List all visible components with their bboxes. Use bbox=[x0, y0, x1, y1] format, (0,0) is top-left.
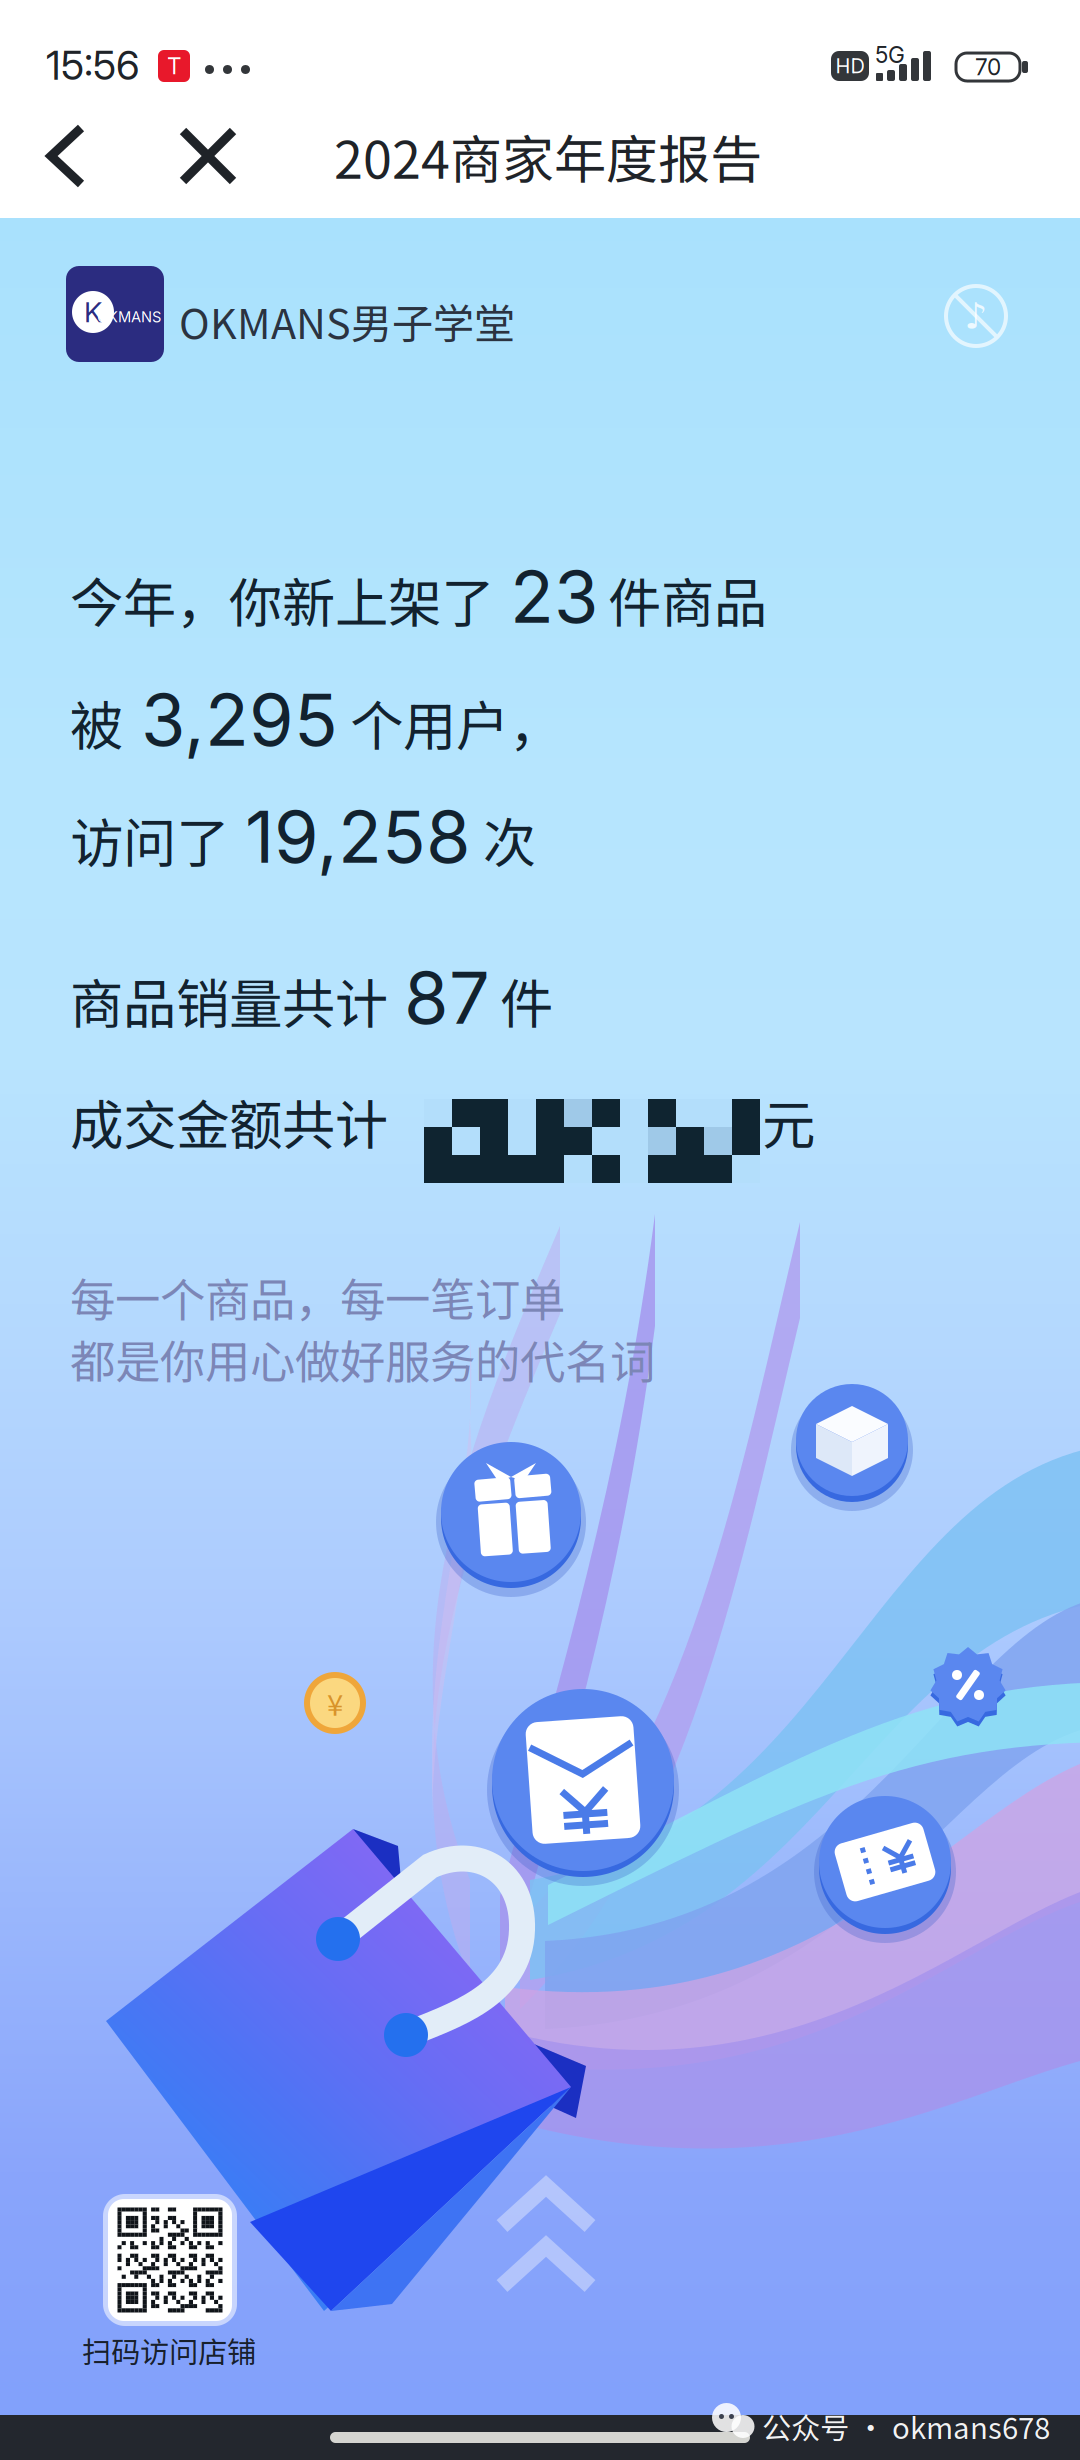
staticText: ¥ bbox=[327, 1682, 343, 1724]
staticText: ♪ bbox=[964, 295, 987, 337]
staticText: 元 bbox=[762, 1083, 815, 1160]
staticText: 70 bbox=[975, 53, 1001, 81]
staticText: 今年，你新上架了 bbox=[70, 561, 494, 638]
staticText: 3,295 bbox=[141, 676, 338, 763]
staticText: 商品销量共计 bbox=[70, 962, 388, 1039]
staticText: 87 bbox=[404, 954, 490, 1041]
button[interactable]: 返回 bbox=[18, 108, 114, 204]
staticText: 扫码访问店铺 bbox=[82, 2329, 256, 2371]
staticText: 19,258 bbox=[245, 793, 471, 880]
staticText: 成交金额共计 bbox=[70, 1083, 388, 1160]
button[interactable]: 扫码访问店铺 bbox=[103, 2194, 237, 2326]
staticText: 15:56 bbox=[46, 41, 140, 89]
staticText: 件 bbox=[500, 962, 553, 1039]
staticText: 个用户， bbox=[350, 684, 562, 761]
staticText: 5G bbox=[875, 41, 905, 68]
staticText: 2024商家年度报告 bbox=[334, 118, 762, 194]
staticText: OKMANS男子学堂 bbox=[179, 291, 515, 351]
staticText: 每一个商品，每一笔订单 bbox=[70, 1264, 565, 1330]
staticText: HD bbox=[835, 54, 864, 78]
staticText: K bbox=[84, 295, 102, 329]
button[interactable]: 静音 bbox=[934, 274, 1018, 358]
staticText: 被 bbox=[70, 684, 123, 761]
staticText: 访问了 bbox=[70, 801, 229, 878]
staticText: 次 bbox=[483, 801, 536, 878]
button[interactable]: 关闭 bbox=[160, 108, 256, 204]
staticText: 公众号 · okmans678 bbox=[762, 2405, 1050, 2447]
staticText: 都是你用心做好服务的代名词 bbox=[70, 1326, 655, 1392]
staticText: OKMANS bbox=[97, 308, 161, 326]
staticText: T bbox=[167, 52, 181, 80]
staticText: 件商品 bbox=[608, 561, 767, 638]
staticText: 23 bbox=[510, 553, 598, 640]
